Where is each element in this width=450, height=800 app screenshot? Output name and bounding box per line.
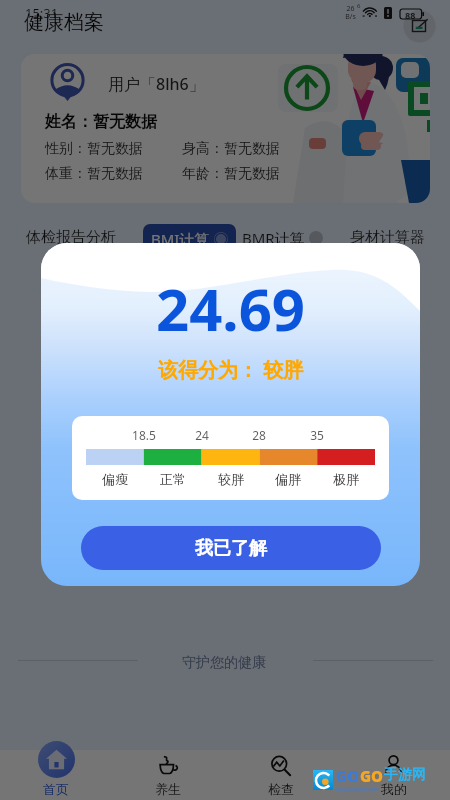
staticText: 26 B/s <box>345 4 356 21</box>
staticText: 养生 <box>155 781 181 797</box>
staticText: BMR计算 <box>242 228 305 248</box>
staticText: 年龄：暂无数据 <box>182 165 280 183</box>
staticText: 健康档案 <box>24 10 104 35</box>
staticText: 守护您的健康 <box>182 654 266 672</box>
button[interactable]: 首页 <box>0 750 112 800</box>
button[interactable]: 身材计算器 <box>350 228 425 247</box>
staticText: 24.69 <box>156 269 306 348</box>
button[interactable]: 体检报告分析 <box>26 228 116 247</box>
staticText: 体重：暂无数据 <box>45 165 143 183</box>
button[interactable]: 检查 <box>224 750 337 800</box>
staticText: 姓名：暂无数据 <box>45 112 157 132</box>
staticText: 该得分为： 较胖 <box>158 356 304 383</box>
other: Notes <box>411 18 428 33</box>
staticText: 偏胖 <box>268 471 308 487</box>
staticText: 28 <box>239 427 279 443</box>
staticText: GO <box>360 766 384 786</box>
button[interactable]: 我的 <box>337 750 450 800</box>
button[interactable]: BMI计算 <box>143 224 236 254</box>
staticText: 6 <box>357 2 361 10</box>
staticText: 手游网 <box>384 766 426 784</box>
staticText: 35 <box>297 427 337 443</box>
staticText: 我的 <box>381 781 407 797</box>
staticText: 身高：暂无数据 <box>182 140 280 158</box>
button[interactable]: 养生 <box>112 750 224 800</box>
staticText: 检查 <box>268 781 294 797</box>
staticText: 15:31 <box>25 4 59 22</box>
staticText: 88 <box>405 9 416 21</box>
staticText: 较胖 <box>211 471 251 487</box>
staticText: 正常 <box>153 471 193 487</box>
staticText: 性别：暂无数据 <box>45 140 143 158</box>
staticText: 24 <box>182 427 222 443</box>
staticText: BMI计算 <box>151 229 210 249</box>
staticText: GO <box>336 766 360 786</box>
staticText: 18.5 <box>124 427 164 443</box>
button[interactable]: 我已了解 <box>81 526 381 570</box>
staticText: 我已了解 <box>195 537 267 560</box>
staticText: 首页 <box>43 781 69 797</box>
staticText: 极胖 <box>326 471 366 487</box>
staticText: 偏瘦 <box>95 471 135 487</box>
staticText: 用户「8lh6」 <box>108 73 205 95</box>
button[interactable]: BMR计算 <box>242 228 323 248</box>
staticText: www.gogotw.com <box>336 786 379 793</box>
